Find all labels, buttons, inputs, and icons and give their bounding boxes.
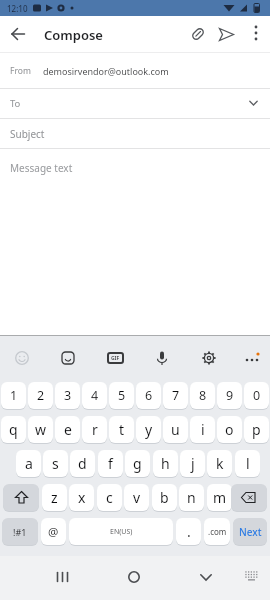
staticText: t bbox=[119, 420, 125, 439]
button[interactable]: v bbox=[124, 484, 149, 511]
button[interactable] bbox=[197, 346, 221, 370]
button[interactable]: 6 bbox=[136, 382, 161, 409]
staticText: y bbox=[145, 420, 153, 439]
button[interactable] bbox=[150, 346, 174, 370]
button[interactable]: From bbox=[0, 53, 270, 88]
button[interactable]: To bbox=[0, 89, 270, 118]
staticText: g bbox=[133, 454, 142, 473]
staticText: h bbox=[161, 454, 170, 473]
button[interactable]: j bbox=[180, 450, 205, 477]
staticText: 12:10 bbox=[7, 3, 28, 14]
staticText: Next bbox=[239, 525, 262, 539]
button[interactable]: .com bbox=[204, 518, 230, 545]
staticText: To bbox=[10, 97, 21, 110]
staticText: .com bbox=[208, 526, 227, 537]
button[interactable] bbox=[213, 21, 239, 47]
staticText: w bbox=[35, 420, 47, 439]
staticText: m bbox=[213, 488, 227, 507]
button[interactable]: i bbox=[190, 416, 215, 443]
staticText: GIF bbox=[111, 355, 120, 362]
staticText: 8 bbox=[199, 387, 207, 404]
button[interactable] bbox=[185, 21, 211, 47]
staticText: i bbox=[201, 420, 205, 439]
button[interactable]: p bbox=[244, 416, 269, 443]
button[interactable] bbox=[120, 563, 148, 591]
button[interactable]: 1 bbox=[1, 382, 26, 409]
button[interactable] bbox=[56, 346, 80, 370]
staticText: q bbox=[9, 420, 18, 439]
staticText: r bbox=[92, 420, 98, 439]
button[interactable]: u bbox=[163, 416, 188, 443]
staticText: 7 bbox=[172, 387, 180, 404]
staticText: k bbox=[216, 454, 224, 473]
button[interactable]: a bbox=[16, 450, 41, 477]
button[interactable]: c bbox=[97, 484, 122, 511]
button[interactable]: q bbox=[1, 416, 26, 443]
button[interactable] bbox=[3, 484, 39, 511]
staticText: b bbox=[160, 488, 169, 507]
button[interactable] bbox=[0, 16, 36, 52]
staticText: n bbox=[187, 488, 196, 507]
button[interactable] bbox=[240, 346, 264, 370]
button[interactable]: f bbox=[98, 450, 123, 477]
button[interactable]: 4 bbox=[82, 382, 107, 409]
button[interactable]: e bbox=[55, 416, 80, 443]
button[interactable]: GIF bbox=[103, 346, 127, 370]
button[interactable]: 2 bbox=[28, 382, 53, 409]
staticText: 3 bbox=[64, 387, 72, 404]
button[interactable]: n bbox=[179, 484, 204, 511]
staticText: Message text bbox=[10, 161, 73, 175]
button[interactable]: 8 bbox=[190, 382, 215, 409]
button[interactable] bbox=[48, 563, 76, 591]
button[interactable] bbox=[244, 21, 268, 45]
button[interactable]: o bbox=[217, 416, 242, 443]
button[interactable]: 0 bbox=[244, 382, 269, 409]
button[interactable]: . bbox=[176, 518, 201, 545]
staticText: 0 bbox=[253, 387, 261, 404]
button[interactable]: m bbox=[207, 484, 232, 511]
button[interactable]: 5 bbox=[109, 382, 134, 409]
button[interactable]: x bbox=[69, 484, 94, 511]
staticText: a bbox=[25, 454, 33, 473]
button[interactable] bbox=[238, 563, 264, 589]
button[interactable]: 9 bbox=[217, 382, 242, 409]
staticText: Compose bbox=[44, 26, 103, 44]
button[interactable]: k bbox=[207, 450, 232, 477]
staticText: z bbox=[51, 488, 58, 507]
button[interactable]: @ bbox=[41, 518, 66, 545]
staticText: v bbox=[133, 488, 141, 507]
button[interactable]: z bbox=[42, 484, 67, 511]
button[interactable]: l bbox=[235, 450, 260, 477]
staticText: 4 bbox=[91, 387, 99, 404]
button[interactable]: !#1 bbox=[2, 518, 38, 545]
staticText: d bbox=[78, 454, 87, 473]
staticText: EN(US) bbox=[110, 527, 133, 537]
button[interactable]: b bbox=[152, 484, 177, 511]
staticText: 1 bbox=[10, 387, 18, 404]
staticText: c bbox=[106, 488, 113, 507]
button[interactable]: y bbox=[136, 416, 161, 443]
button[interactable]: s bbox=[43, 450, 68, 477]
button[interactable]: r bbox=[82, 416, 107, 443]
button[interactable]: d bbox=[70, 450, 95, 477]
staticText: u bbox=[171, 420, 180, 439]
staticText: f bbox=[108, 454, 113, 473]
button[interactable]: w bbox=[28, 416, 53, 443]
button[interactable]: Message text bbox=[0, 149, 270, 600]
staticText: !#1 bbox=[13, 526, 27, 538]
button[interactable]: g bbox=[125, 450, 150, 477]
button[interactable]: 7 bbox=[163, 382, 188, 409]
button[interactable]: Subject bbox=[0, 119, 270, 148]
button[interactable] bbox=[231, 484, 267, 511]
staticText: p bbox=[252, 420, 261, 439]
button[interactable] bbox=[10, 346, 34, 370]
staticText: o bbox=[225, 420, 234, 439]
button[interactable] bbox=[192, 563, 220, 591]
staticText: Subject bbox=[10, 127, 45, 141]
staticText: j bbox=[191, 454, 195, 473]
button[interactable]: t bbox=[109, 416, 134, 443]
button[interactable]: Next bbox=[233, 518, 267, 545]
button[interactable]: h bbox=[153, 450, 178, 477]
button[interactable]: EN(US) bbox=[69, 518, 173, 545]
button[interactable]: 3 bbox=[55, 382, 80, 409]
